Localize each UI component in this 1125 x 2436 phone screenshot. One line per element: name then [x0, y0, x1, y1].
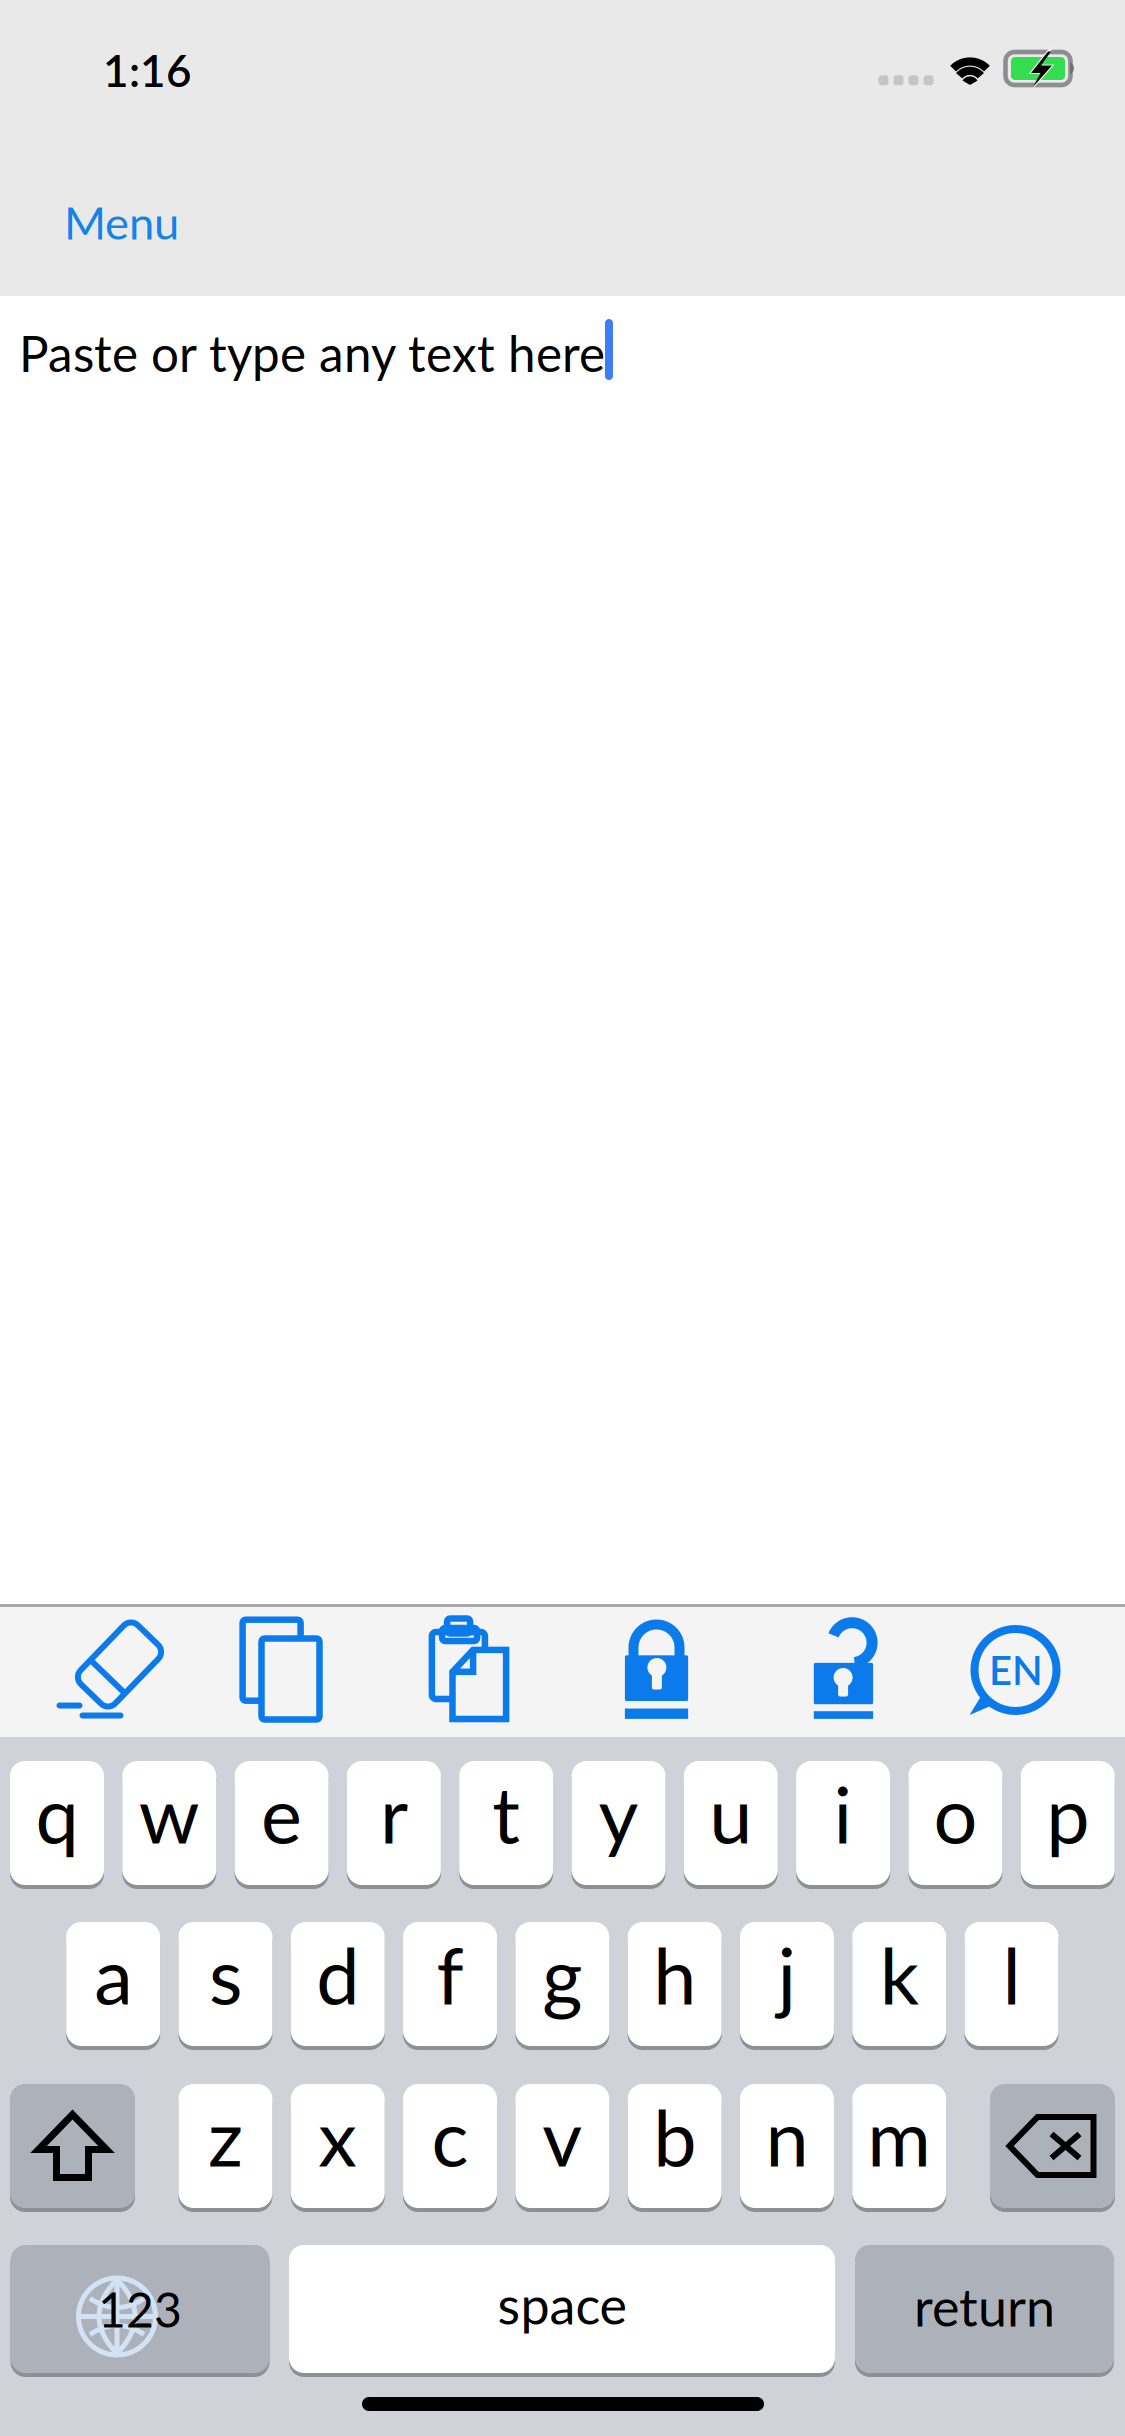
staticText: Paste or type any text here [19, 323, 605, 383]
staticText: e [261, 1767, 302, 1860]
staticText: p [1046, 1767, 1089, 1860]
button[interactable]: o [908, 1761, 1002, 1891]
button[interactable]: d [291, 1922, 385, 2052]
staticText: h [653, 1928, 696, 2021]
button[interactable]: p [1021, 1761, 1115, 1891]
button[interactable]: h [628, 1922, 722, 2052]
staticText: d [316, 1928, 359, 2021]
staticText: z [208, 2090, 243, 2183]
button[interactable]: c [403, 2084, 497, 2214]
button[interactable]: e [235, 1761, 329, 1891]
button[interactable]: l [964, 1922, 1058, 2052]
button[interactable]: j [740, 1922, 834, 2052]
button[interactable]: q [10, 1761, 104, 1891]
staticText: a [94, 1928, 132, 2021]
staticText: t [492, 1767, 520, 1860]
staticText: f [436, 1928, 463, 2021]
button[interactable]: Encrypt [591, 1604, 721, 1734]
button[interactable]: Decrypt [779, 1604, 909, 1734]
staticText: return [914, 2275, 1055, 2338]
staticText: y [598, 1767, 638, 1860]
button[interactable]: i [796, 1761, 890, 1891]
button[interactable]: Copy [216, 1604, 346, 1734]
button[interactable]: Delete [990, 2084, 1115, 2214]
staticText: space [497, 2273, 626, 2336]
button[interactable]: x [291, 2084, 385, 2214]
staticText: u [709, 1767, 752, 1860]
staticText: i [834, 1767, 853, 1860]
staticText: q [35, 1767, 78, 1860]
staticText: m [867, 2090, 931, 2183]
button[interactable]: Menu [64, 177, 224, 267]
button[interactable]: f [403, 1922, 497, 2052]
staticText: k [880, 1928, 919, 2021]
button[interactable]: 123 [10, 2245, 269, 2379]
button[interactable]: Clear text [45, 1604, 175, 1734]
staticText: n [765, 2090, 808, 2183]
button[interactable]: space [289, 2245, 835, 2379]
button[interactable]: Language [950, 1605, 1080, 1735]
button[interactable]: v [515, 2084, 609, 2214]
staticText: o [933, 1767, 977, 1860]
button[interactable]: z [178, 2084, 272, 2214]
staticText: r [380, 1767, 408, 1860]
staticText: g [542, 1928, 582, 2021]
staticText: w [139, 1767, 200, 1860]
button[interactable]: w [122, 1761, 216, 1891]
staticText: j [777, 1928, 796, 2021]
button[interactable]: y [571, 1761, 665, 1891]
button[interactable]: g [515, 1922, 609, 2052]
button[interactable]: m [852, 2084, 946, 2214]
staticText: l [1002, 1928, 1020, 2021]
staticText: s [209, 1928, 242, 2021]
button[interactable]: u [684, 1761, 778, 1891]
button[interactable]: t [459, 1761, 553, 1891]
button[interactable]: s [178, 1922, 272, 2052]
button[interactable]: b [628, 2084, 722, 2214]
button[interactable]: r [347, 1761, 441, 1891]
staticText: Menu [64, 195, 179, 249]
button[interactable]: n [740, 2084, 834, 2214]
staticText: v [542, 2090, 582, 2183]
button[interactable]: return [855, 2245, 1114, 2379]
staticText: x [318, 2090, 357, 2183]
button[interactable]: Shift [10, 2084, 135, 2214]
staticText: c [431, 2090, 468, 2183]
button[interactable]: a [66, 1922, 160, 2052]
staticText: 123 [98, 2280, 182, 2338]
staticText: 1:16 [103, 44, 192, 96]
staticText: b [653, 2090, 696, 2183]
button[interactable]: k [852, 1922, 946, 2052]
staticText: EN [989, 1645, 1043, 1693]
button[interactable]: Paste [404, 1605, 534, 1735]
